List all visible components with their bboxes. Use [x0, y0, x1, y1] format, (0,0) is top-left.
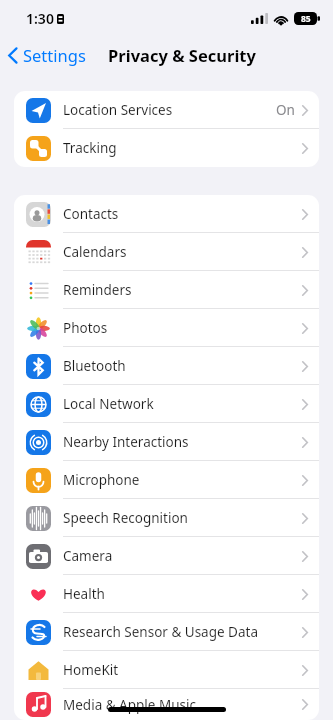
staticText: 1:30: [26, 9, 54, 28]
staticText: Photos: [63, 319, 108, 337]
button[interactable]: Photos: [14, 309, 319, 347]
button[interactable]: Reminders: [14, 271, 319, 309]
staticText: Camera: [63, 547, 113, 565]
staticText: Calendars: [63, 243, 127, 261]
button[interactable]: Calendars: [14, 233, 319, 271]
button[interactable]: Speech Recognition: [14, 499, 319, 537]
staticText: Location Services: [63, 101, 173, 119]
button[interactable]: Location Services: [14, 91, 319, 129]
button[interactable]: Research Sensor & Usage Data: [14, 613, 319, 651]
button[interactable]: Tracking: [14, 129, 319, 167]
button[interactable]: Bluetooth: [14, 347, 319, 385]
button[interactable]: HomeKit: [14, 651, 319, 689]
button[interactable]: Local Network: [14, 385, 319, 423]
staticText: 85: [301, 13, 311, 25]
staticText: Settings: [23, 44, 86, 66]
button[interactable]: Contacts: [14, 195, 319, 233]
staticText: Media & Apple Music: [63, 696, 196, 714]
staticText: Tracking: [63, 139, 117, 157]
button[interactable]: Camera: [14, 537, 319, 575]
staticText: Reminders: [63, 281, 132, 299]
staticText: Research Sensor & Usage Data: [63, 623, 258, 641]
staticText: HomeKit: [63, 661, 119, 679]
button[interactable]: Microphone: [14, 461, 319, 499]
staticText: Microphone: [63, 471, 140, 489]
button[interactable]: Nearby Interactions: [14, 423, 319, 461]
staticText: Nearby Interactions: [63, 433, 189, 451]
staticText: On: [276, 101, 295, 119]
staticText: Contacts: [63, 205, 119, 223]
staticText: Health: [63, 585, 105, 603]
staticText: Bluetooth: [63, 357, 126, 375]
button[interactable]: Health: [14, 575, 319, 613]
staticText: Privacy & Security: [108, 44, 256, 66]
button[interactable]: Media & Apple Music: [14, 689, 319, 720]
staticText: Local Network: [63, 395, 154, 413]
staticText: Speech Recognition: [63, 509, 188, 527]
button[interactable]: Settings: [0, 40, 94, 70]
